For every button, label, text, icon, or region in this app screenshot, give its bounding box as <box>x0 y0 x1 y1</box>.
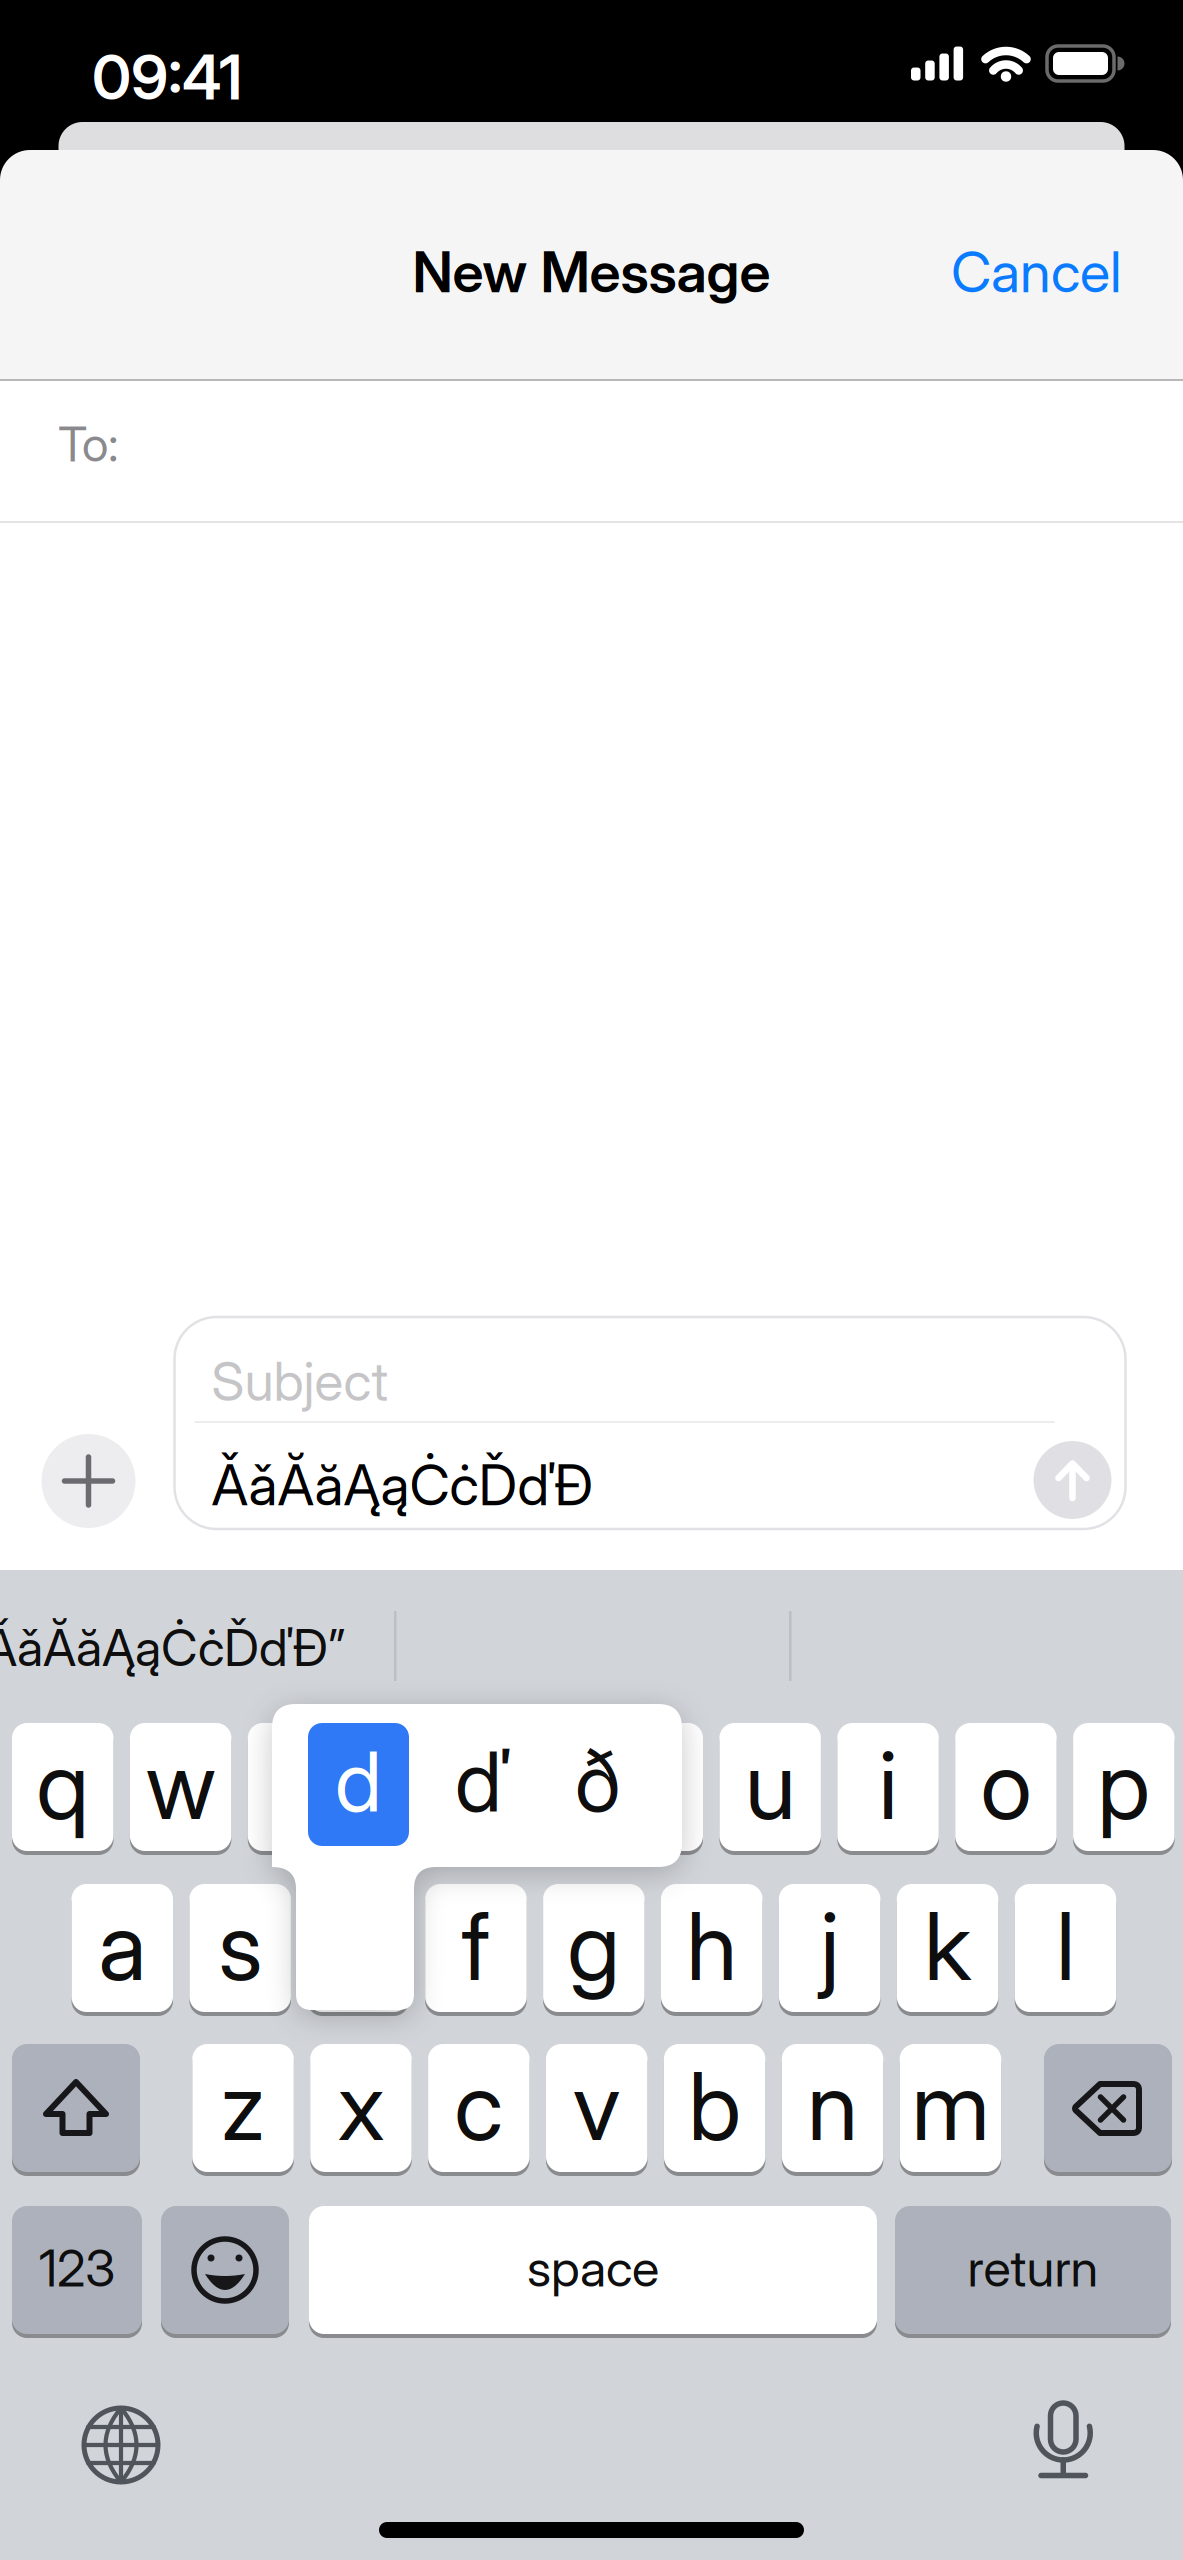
staticText: x <box>337 2049 384 2162</box>
button[interactable]: h <box>661 1884 762 2016</box>
staticText: 123 <box>39 2237 115 2299</box>
staticText: “ǍǎĂăĄąĊċĎďĐ” <box>0 1617 345 1678</box>
button[interactable]: n <box>782 2044 883 2176</box>
staticText: q <box>36 1728 89 1841</box>
staticText: s <box>218 1889 262 2002</box>
staticText: b <box>688 2049 741 2162</box>
staticText: ð <box>575 1731 620 1831</box>
button[interactable]: d <box>307 1884 409 2016</box>
staticText: a <box>98 1889 146 2002</box>
staticText: i <box>879 1728 898 1841</box>
button[interactable]: y <box>601 1723 703 1855</box>
button[interactable]: Emoji <box>161 2206 289 2338</box>
staticText: f <box>461 1889 490 2002</box>
staticText: w <box>146 1728 216 1841</box>
button[interactable]: t <box>484 1723 585 1855</box>
staticText: z <box>221 2049 266 2162</box>
button[interactable]: suggestion <box>0 1617 345 1678</box>
button[interactable]: b <box>664 2044 765 2176</box>
staticText: e <box>274 1728 324 1841</box>
button[interactable]: z <box>192 2044 294 2176</box>
button[interactable]: x <box>310 2044 412 2176</box>
button[interactable]: f <box>425 1884 527 2016</box>
button[interactable]: Dictation <box>1023 2398 1103 2488</box>
button[interactable]: Add attachment <box>41 1434 135 1528</box>
button[interactable]: w <box>130 1723 231 1855</box>
staticText: h <box>686 1889 737 2002</box>
staticText: n <box>807 2049 858 2162</box>
button[interactable]: s <box>189 1884 291 2016</box>
button[interactable]: j <box>779 1884 880 2016</box>
button[interactable]: c <box>428 2044 530 2176</box>
button[interactable]: Numbers <box>12 2206 142 2338</box>
staticText: m <box>911 2049 989 2162</box>
staticText: return <box>967 2237 1098 2299</box>
staticText: l <box>1056 1889 1075 2002</box>
button[interactable]: space <box>309 2206 877 2338</box>
button[interactable]: To <box>0 381 1183 521</box>
staticText: p <box>1097 1728 1150 1841</box>
staticText: d <box>335 1731 382 1831</box>
staticText: 09:41 <box>92 40 242 114</box>
staticText: space <box>527 2237 659 2299</box>
staticText: New Message <box>412 238 770 306</box>
button[interactable]: Send <box>1033 1441 1111 1519</box>
button[interactable]: p <box>1073 1723 1175 1855</box>
staticText: c <box>454 2049 503 2162</box>
staticText: Cancel <box>951 238 1122 306</box>
staticText: v <box>573 2049 621 2162</box>
staticText: Subject <box>211 1349 388 1413</box>
button[interactable]: Delete <box>1044 2044 1172 2176</box>
button[interactable]: l <box>1015 1884 1116 2016</box>
staticText: ǍǎĂăĄąĊċĎďĐ <box>211 1451 593 1519</box>
staticText: ď <box>455 1731 510 1831</box>
button[interactable]: r <box>366 1723 467 1855</box>
button[interactable]: e <box>248 1723 349 1855</box>
staticText: o <box>980 1728 1031 1841</box>
button[interactable]: k <box>897 1884 998 2016</box>
staticText: k <box>924 1889 971 2002</box>
button[interactable]: a <box>71 1884 173 2016</box>
button[interactable]: v <box>546 2044 647 2176</box>
staticText: g <box>567 1889 620 2002</box>
button[interactable]: Cancel <box>951 238 1122 306</box>
button[interactable]: Next keyboard <box>76 2400 166 2490</box>
staticText: j <box>820 1889 839 2002</box>
staticText: r <box>401 1728 431 1841</box>
staticText: To: <box>58 415 119 473</box>
button[interactable]: q <box>12 1723 113 1855</box>
button[interactable]: return <box>895 2206 1171 2338</box>
button[interactable]: m <box>900 2044 1001 2176</box>
button[interactable]: Shift <box>12 2044 140 2176</box>
staticText: u <box>745 1728 796 1841</box>
button[interactable]: g <box>543 1884 645 2016</box>
button[interactable]: i <box>837 1723 939 1855</box>
button[interactable]: u <box>719 1723 821 1855</box>
button[interactable]: o <box>955 1723 1057 1855</box>
